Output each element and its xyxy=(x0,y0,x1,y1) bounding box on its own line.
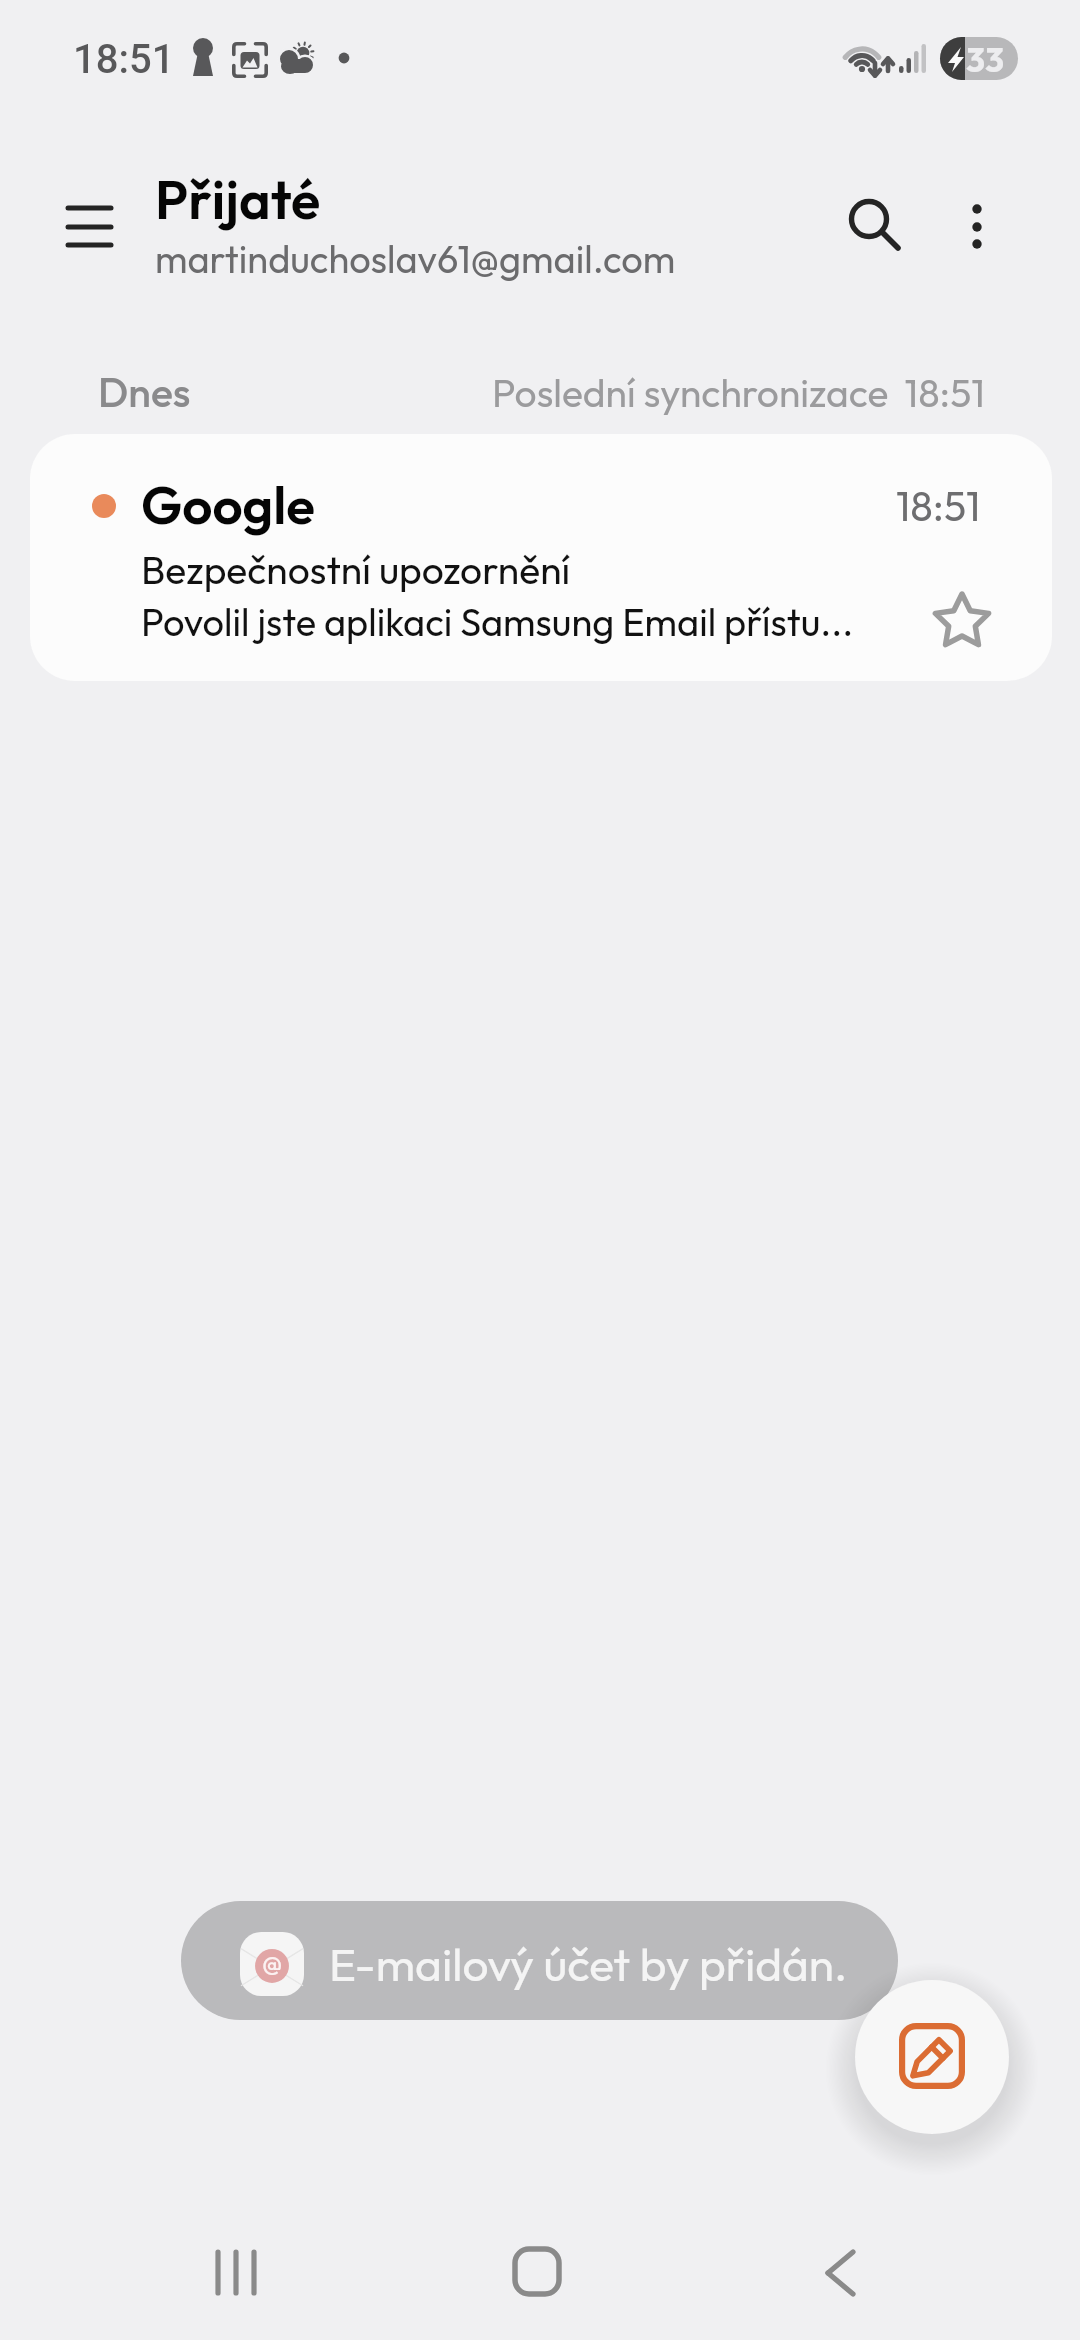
button[interactable]: More options xyxy=(932,182,1022,272)
button[interactable]: Recent apps xyxy=(196,2229,286,2319)
staticText: 18:51 xyxy=(73,36,175,83)
staticText: 33 xyxy=(966,38,1005,81)
staticText: 18:51 xyxy=(896,480,981,532)
button[interactable]: Mark as favourite xyxy=(916,574,1008,666)
staticText: Poslední synchronizace 18:51 xyxy=(492,368,985,417)
staticText: Google xyxy=(141,471,315,538)
staticText: Bezpečnostní upozornění xyxy=(141,545,571,594)
staticText: Přijaté xyxy=(155,165,321,233)
button[interactable]: Home xyxy=(492,2227,582,2317)
staticText: Dnes xyxy=(98,366,191,418)
staticText: martinduchoslav61@gmail.com xyxy=(155,235,676,283)
staticText: @ xyxy=(262,1946,283,1980)
button[interactable]: Search xyxy=(831,181,921,271)
staticText: E-mailový účet by přidán. xyxy=(329,1935,848,1993)
button[interactable]: Open navigation drawer xyxy=(44,182,134,272)
button[interactable]: Back xyxy=(783,2229,873,2319)
staticText: Povolil jste aplikaci Samsung Email přís… xyxy=(141,598,854,646)
button[interactable]: Compose new email xyxy=(855,1980,1009,2134)
button[interactable]: Google xyxy=(30,434,1052,681)
